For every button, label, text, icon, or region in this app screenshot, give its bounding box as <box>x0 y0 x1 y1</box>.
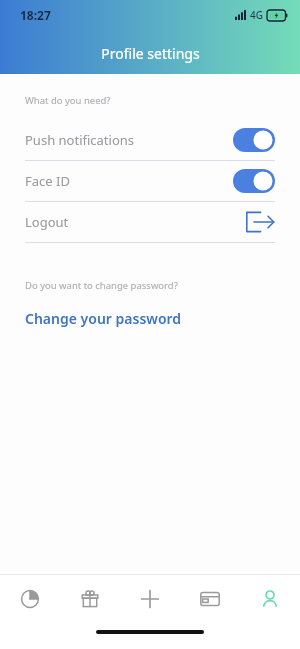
staticText: Profile settings <box>101 44 200 63</box>
button[interactable]: Cards <box>180 575 240 623</box>
staticText: What do you need? <box>25 94 111 107</box>
button[interactable]: Toggle <box>233 169 275 193</box>
button[interactable]: Face ID <box>0 161 300 201</box>
staticText: Face ID <box>25 172 70 190</box>
button[interactable]: Gifts <box>60 575 120 623</box>
button[interactable]: Toggle <box>233 128 275 152</box>
staticText: Do you want to change password? <box>25 279 178 292</box>
button[interactable]: Logout <box>0 202 300 242</box>
button[interactable]: Profile <box>240 575 300 623</box>
staticText: 4G <box>250 8 263 22</box>
button[interactable]: Change your password <box>0 305 300 332</box>
button[interactable]: Push notifications <box>0 120 300 160</box>
staticText: Change your password <box>25 309 182 328</box>
button[interactable]: Statistics <box>0 575 60 623</box>
staticText: Logout <box>25 213 69 231</box>
staticText: Push notifications <box>25 131 135 149</box>
button[interactable]: Add <box>120 575 180 623</box>
button[interactable]: Logout <box>245 210 275 234</box>
staticText: 18:27 <box>20 7 51 23</box>
